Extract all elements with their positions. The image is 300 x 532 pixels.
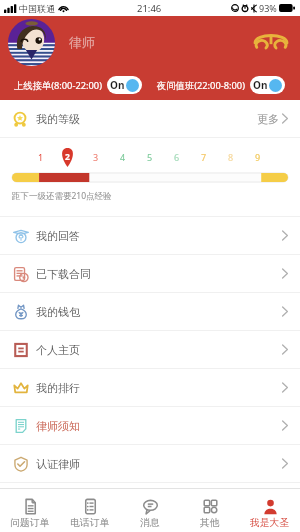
- staticText: 6: [174, 151, 180, 163]
- staticText: 问题订单: [10, 517, 50, 529]
- staticText: 消息: [140, 517, 160, 529]
- staticText: 电话订单: [70, 517, 110, 529]
- staticText: 我的等级: [36, 112, 80, 126]
- button[interactable]: 其他: [180, 489, 240, 532]
- button[interactable]: 活动: [250, 25, 292, 59]
- staticText: 中国联通: [19, 3, 55, 14]
- staticText: 距下一级还需要210点经验: [12, 190, 112, 202]
- button[interactable]: 我的钱包: [0, 293, 300, 331]
- staticText: 夜间值班(22:00-8:00): [157, 79, 245, 92]
- staticText: 4: [120, 151, 126, 163]
- button[interactable]: 消息: [120, 489, 180, 532]
- staticText: 1: [38, 151, 44, 163]
- staticText: 更多: [257, 112, 279, 126]
- button[interactable]: 上线接单(8:00-22:00): [14, 76, 142, 94]
- staticText: 93%: [259, 2, 277, 14]
- button[interactable]: 我的回答: [0, 217, 300, 255]
- staticText: 个人主页: [36, 343, 80, 357]
- staticText: 律师须知: [36, 419, 80, 433]
- staticText: 9: [255, 151, 261, 163]
- staticText: 我是大圣: [250, 517, 290, 529]
- staticText: 上线接单(8:00-22:00): [14, 79, 102, 92]
- staticText: 其他: [200, 517, 220, 529]
- button[interactable]: 问题订单: [0, 489, 60, 532]
- staticText: 2: [65, 151, 70, 163]
- staticText: 我的钱包: [36, 305, 80, 319]
- staticText: 7: [201, 151, 207, 163]
- button[interactable]: 我的等级: [0, 100, 300, 137]
- button[interactable]: 夜间值班(22:00-8:00): [157, 76, 285, 94]
- button[interactable]: 律师须知: [0, 407, 300, 445]
- staticText: 我的回答: [36, 229, 80, 243]
- staticText: 8: [228, 151, 234, 163]
- button[interactable]: 电话订单: [60, 489, 120, 532]
- staticText: 3: [93, 151, 99, 163]
- staticText: 我的排行: [36, 381, 80, 395]
- button[interactable]: 已下载合同: [0, 255, 300, 293]
- staticText: 21:46: [137, 2, 162, 15]
- staticText: 律师: [69, 34, 95, 50]
- button[interactable]: 我是大圣: [240, 489, 300, 532]
- staticText: On: [110, 78, 125, 92]
- staticText: On: [253, 78, 268, 92]
- button[interactable]: 个人主页: [0, 331, 300, 369]
- staticText: 5: [147, 151, 153, 163]
- staticText: 认证律师: [36, 457, 80, 471]
- button[interactable]: 认证律师: [0, 445, 300, 483]
- button[interactable]: 我的排行: [0, 369, 300, 407]
- staticText: 已下载合同: [36, 267, 91, 281]
